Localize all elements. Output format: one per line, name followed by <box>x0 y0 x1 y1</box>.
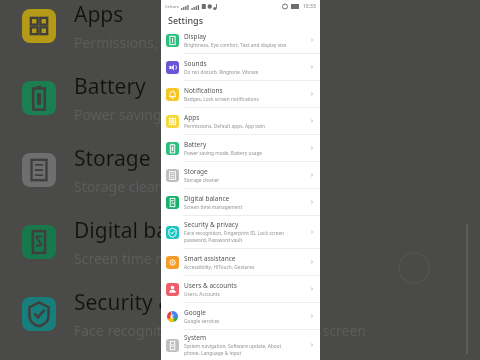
button[interactable]: Sounds <box>161 54 320 80</box>
staticText: System <box>184 333 207 342</box>
staticText: Digital balance <box>74 216 221 245</box>
staticText: Battery <box>184 140 207 149</box>
staticText: Security & privacy <box>74 288 250 317</box>
staticText: Google <box>184 308 206 317</box>
staticText: password, Password vault <box>184 237 243 244</box>
staticText: Face recognition, Fingerprint ID, Lock s… <box>74 321 366 340</box>
staticText: Storage <box>74 144 151 173</box>
staticText: Celcom <box>165 4 179 9</box>
staticText: Users & accounts <box>184 281 237 290</box>
button[interactable]: Users & accounts <box>161 276 320 302</box>
staticText: Permissions, Default apps, App twin <box>74 33 311 52</box>
button[interactable]: Apps <box>161 108 320 134</box>
button[interactable]: Battery <box>161 135 320 161</box>
staticText: Screen time management <box>74 249 244 268</box>
button[interactable]: Smart assistance <box>161 249 320 275</box>
staticText: Settings <box>168 14 204 26</box>
staticText: 10:33 <box>303 3 316 10</box>
staticText: Display <box>184 32 207 41</box>
button[interactable]: Storage <box>161 162 320 188</box>
button[interactable]: Security & privacy <box>161 216 320 248</box>
staticText: Sounds <box>184 59 207 68</box>
staticText: Face recognition, Fingerprint ID, Lock s… <box>184 230 285 237</box>
staticText: Brightness, Eye comfort, Text and displa… <box>184 42 287 49</box>
button[interactable]: System <box>161 330 320 360</box>
staticText: Smart assistance <box>184 254 236 263</box>
staticText: Do not disturb, Ringtone, Vibrate <box>184 69 259 76</box>
staticText: Users, Accounts <box>184 291 220 298</box>
staticText: Storage cleaner <box>184 177 220 184</box>
staticText: Permissions, Default apps, App twin <box>184 123 265 130</box>
staticText: Apps <box>74 0 124 29</box>
staticText: Power saving mode, Battery usage <box>184 150 263 157</box>
staticText: Digital balance <box>184 194 230 203</box>
button[interactable]: Notifications <box>161 81 320 107</box>
staticText: phone, Language & input <box>184 350 242 357</box>
staticText: Battery <box>74 72 146 101</box>
staticText: System navigation, Software update, Abou… <box>184 343 282 350</box>
staticText: Storage cleaner <box>74 177 178 196</box>
button[interactable]: Google <box>161 303 320 329</box>
staticText: Power saving mode, Battery usage <box>74 105 302 124</box>
staticText: Screen time management <box>184 204 243 211</box>
staticText: Google services <box>184 318 220 325</box>
staticText: Badges, Lock screen notifications <box>184 96 259 103</box>
staticText: Storage <box>184 167 208 176</box>
staticText: Apps <box>184 113 200 122</box>
staticText: Accessibility, HiTouch, Gestures <box>184 264 255 271</box>
staticText: Security & privacy <box>184 220 239 229</box>
button[interactable]: Display <box>161 27 320 53</box>
staticText: Notifications <box>184 86 223 95</box>
button[interactable]: Digital balance <box>161 189 320 215</box>
